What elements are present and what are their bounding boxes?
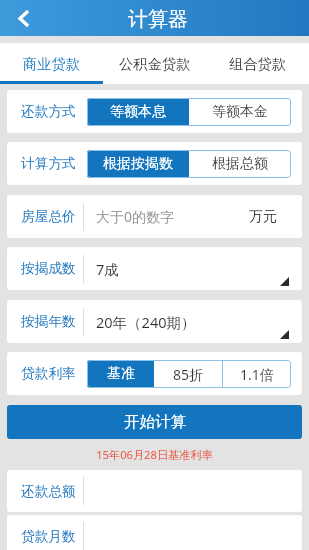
staticText: 15年06月28日基准利率: [0, 447, 309, 462]
staticText: 还款方式: [21, 103, 76, 120]
button[interactable]: 根据总额: [189, 150, 291, 178]
button[interactable]: 根据按揭数: [87, 150, 189, 178]
staticText: 万元: [249, 208, 277, 226]
staticText: 开始计算: [124, 412, 186, 432]
staticText: 计算方式: [21, 155, 76, 172]
staticText: 贷款月数: [21, 528, 76, 545]
staticText: 还款总额: [21, 483, 76, 500]
staticText: 按揭成数: [21, 260, 76, 277]
staticText: 等额本息: [110, 103, 166, 121]
staticText: 房屋总价: [21, 208, 76, 225]
button[interactable]: 按揭成数: [7, 247, 302, 290]
button[interactable]: Back: [0, 0, 46, 36]
button[interactable]: 85折: [154, 360, 222, 388]
button[interactable]: 开始计算: [7, 405, 302, 439]
button[interactable]: 组合贷款: [206, 43, 309, 84]
staticText: 等额本金: [212, 103, 268, 121]
staticText: 贷款利率: [21, 365, 76, 382]
staticText: 根据按揭数: [103, 155, 173, 173]
staticText: 85折: [173, 365, 204, 384]
staticText: 公积金贷款: [119, 55, 191, 73]
button[interactable]: 1.1倍: [223, 360, 291, 388]
staticText: 计算器: [128, 7, 188, 32]
staticText: 基准: [107, 365, 135, 383]
staticText: 商业贷款: [23, 55, 81, 73]
button[interactable]: 公积金贷款: [103, 43, 206, 84]
staticText: 20年（240期）: [96, 312, 196, 332]
staticText: 7成: [96, 259, 119, 279]
staticText: 大于0的数字: [96, 207, 175, 226]
button[interactable]: 等额本息: [87, 98, 189, 126]
button[interactable]: 等额本金: [189, 98, 291, 126]
button[interactable]: 按揭年数: [7, 300, 302, 343]
staticText: 根据总额: [212, 155, 268, 173]
staticText: 1.1倍: [240, 365, 274, 384]
staticText: 组合贷款: [229, 55, 287, 73]
button[interactable]: 商业贷款: [0, 43, 103, 84]
button[interactable]: 基准: [87, 360, 154, 388]
staticText: 按揭年数: [21, 313, 76, 330]
